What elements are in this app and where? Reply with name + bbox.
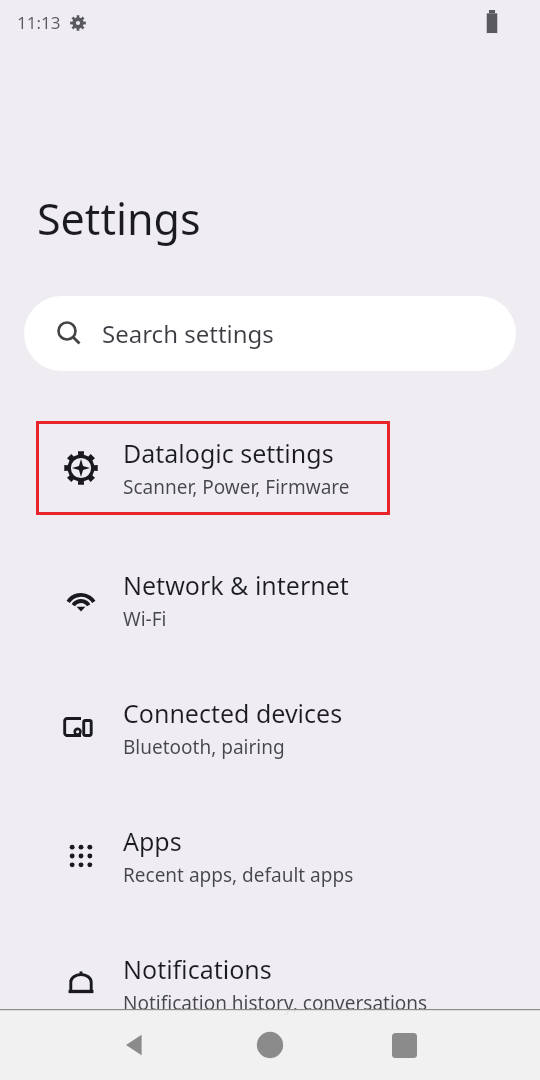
staticText: Notification history, conversations [123, 990, 428, 1016]
staticText: Settings [37, 189, 201, 248]
staticText: Recent apps, default apps [123, 862, 354, 888]
button[interactable]: Apps [0, 811, 540, 901]
button[interactable]: Recent apps [377, 1018, 431, 1072]
button[interactable]: Home [243, 1018, 297, 1072]
button[interactable]: Network & internet [0, 555, 540, 645]
staticText: Network & internet [123, 568, 349, 602]
staticText: Connected devices [123, 696, 343, 730]
staticText: 11:13 [17, 11, 61, 34]
button[interactable]: Notifications [0, 939, 540, 1029]
staticText: Apps [123, 824, 182, 858]
staticText: Bluetooth, pairing [123, 734, 285, 760]
staticText: Datalogic settings [123, 436, 334, 470]
staticText: Notifications [123, 952, 272, 986]
button[interactable]: Search settings [24, 296, 516, 371]
button[interactable]: Back [108, 1018, 162, 1072]
button[interactable]: Datalogic settings [36, 421, 390, 515]
staticText: Wi-Fi [123, 606, 167, 632]
button[interactable]: Connected devices [0, 683, 540, 773]
staticText: Search settings [102, 317, 274, 350]
staticText: Scanner, Power, Firmware [123, 474, 350, 500]
